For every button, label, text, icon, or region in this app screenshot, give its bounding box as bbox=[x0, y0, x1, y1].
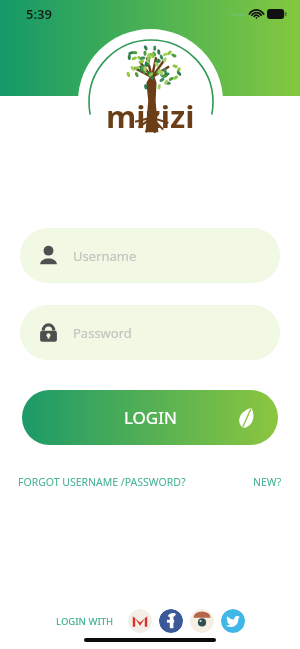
staticText: LOGIN bbox=[124, 406, 177, 429]
button[interactable]: LOGIN bbox=[22, 390, 278, 445]
button[interactable]: Sign in with Twitter bbox=[221, 609, 245, 633]
staticText: Username bbox=[73, 247, 137, 265]
staticText: NEW? bbox=[253, 475, 282, 489]
staticText: mizizi bbox=[106, 95, 195, 137]
staticText: Password bbox=[73, 324, 132, 342]
staticText: LOGIN WITH bbox=[56, 615, 114, 628]
button[interactable]: Username bbox=[20, 228, 280, 283]
button[interactable]: Sign in with Instagram bbox=[190, 609, 214, 633]
button[interactable]: FORGOT USERNAME /PASSWORD? bbox=[18, 471, 186, 493]
button[interactable]: Sign in with Facebook bbox=[159, 609, 183, 633]
button[interactable]: NEW? bbox=[253, 471, 282, 493]
button[interactable]: Sign in with Gmail bbox=[128, 609, 152, 633]
button[interactable]: Password bbox=[20, 305, 280, 360]
staticText: FORGOT USERNAME /PASSWORD? bbox=[18, 475, 186, 489]
staticText: 5:39 bbox=[26, 5, 52, 23]
